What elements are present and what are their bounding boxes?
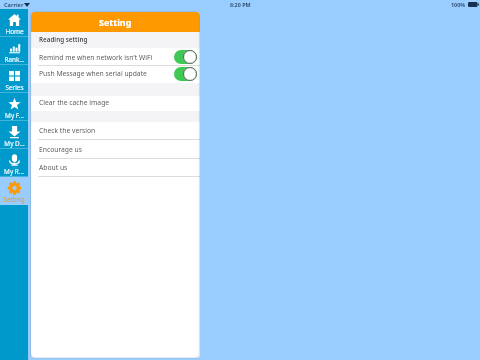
staticText: 8:20 PM: [230, 1, 251, 8]
staticText: Clear the cache image: [39, 98, 110, 107]
button[interactable]: Home: [0, 9, 28, 37]
button[interactable]: My R...: [0, 149, 28, 177]
button[interactable]: Encourage us: [31, 140, 200, 159]
button[interactable]: Remind me when network isn't WiFi: [31, 48, 200, 66]
staticText: Rank...: [4, 55, 25, 64]
staticText: Series: [5, 83, 24, 92]
staticText: Remind me when network isn't WiFi: [39, 53, 153, 62]
button[interactable]: My F...: [0, 93, 28, 121]
staticText: Push Message when serial update: [39, 69, 147, 78]
staticText: Home: [5, 27, 24, 36]
staticText: Setting: [3, 195, 25, 204]
button[interactable]: Check the version: [31, 121, 200, 139]
button[interactable]: Push Message when serial update: [31, 65, 200, 82]
button[interactable]: Clear the cache image: [31, 95, 200, 110]
staticText: Carrier: [4, 1, 24, 9]
staticText: Reading setting: [39, 35, 88, 44]
button[interactable]: Toggle: [174, 67, 197, 81]
staticText: About us: [39, 163, 68, 172]
staticText: Encourage us: [39, 145, 82, 154]
staticText: 100%: [451, 1, 466, 8]
staticText: Check the version: [39, 126, 96, 135]
staticText: My D...: [4, 139, 25, 148]
button[interactable]: Series: [0, 65, 28, 93]
button[interactable]: Toggle: [174, 50, 197, 64]
button[interactable]: About us: [31, 158, 200, 176]
staticText: My F...: [5, 111, 24, 120]
staticText: Setting: [99, 16, 132, 28]
staticText: My R...: [4, 167, 24, 176]
button[interactable]: My D...: [0, 121, 28, 149]
button[interactable]: Setting: [0, 177, 28, 205]
button[interactable]: Rank...: [0, 37, 28, 65]
